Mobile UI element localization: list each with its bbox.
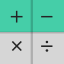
button[interactable]: Multiply (0, 32, 32, 64)
button[interactable]: Divide (32, 32, 64, 64)
button[interactable]: Subtract (32, 0, 64, 32)
button[interactable]: Add (0, 0, 32, 32)
